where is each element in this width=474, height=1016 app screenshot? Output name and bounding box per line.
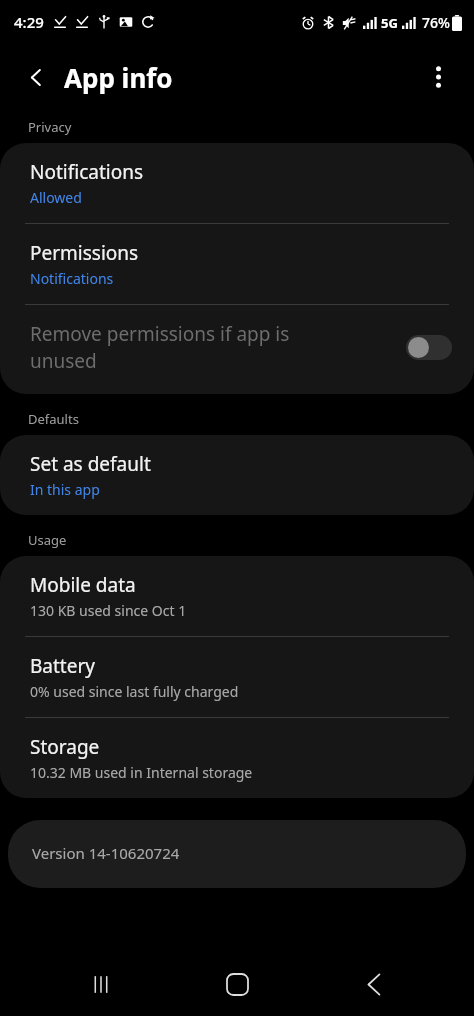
button[interactable]: More options <box>414 53 462 101</box>
button[interactable]: Remove permissions if app is unused <box>0 305 474 394</box>
staticText: 5G <box>381 14 398 32</box>
staticText: Usage <box>28 531 67 549</box>
staticText: Notifications <box>30 159 144 185</box>
button[interactable]: Recent apps <box>65 952 137 1016</box>
button[interactable]: Battery <box>0 637 474 717</box>
button[interactable]: Version 14-10620724 <box>8 820 466 888</box>
button[interactable]: Permissions <box>0 224 474 304</box>
staticText: Privacy <box>28 118 72 136</box>
staticText: Mobile data <box>30 572 136 598</box>
button[interactable]: Set as default <box>0 435 474 515</box>
staticText: In this app <box>30 480 100 499</box>
button[interactable]: Mobile data <box>0 556 474 636</box>
staticText: 76% <box>422 13 450 32</box>
staticText: App info <box>64 60 173 95</box>
staticText: Storage <box>30 734 100 760</box>
staticText: Remove permissions if app is unused <box>30 321 396 374</box>
staticText: Allowed <box>30 188 82 207</box>
staticText: Set as default <box>30 451 151 477</box>
staticText: Notifications <box>30 269 114 288</box>
button[interactable]: Remove permissions if app is unused <box>406 335 452 360</box>
staticText: Permissions <box>30 240 139 266</box>
button[interactable]: Navigate up <box>14 55 58 99</box>
button[interactable]: Back <box>338 952 410 1016</box>
staticText: Version 14-10620724 <box>32 843 180 863</box>
staticText: Defaults <box>28 410 79 428</box>
button[interactable]: Storage <box>0 718 474 798</box>
button[interactable]: Home <box>201 952 273 1016</box>
staticText: Battery <box>30 653 95 679</box>
staticText: 0% used since last fully charged <box>30 682 239 701</box>
staticText: 130 KB used since Oct 1 <box>30 601 187 620</box>
staticText: 10.32 MB used in Internal storage <box>30 763 253 782</box>
staticText: 4:29 <box>14 12 44 32</box>
button[interactable]: Notifications <box>0 143 474 223</box>
